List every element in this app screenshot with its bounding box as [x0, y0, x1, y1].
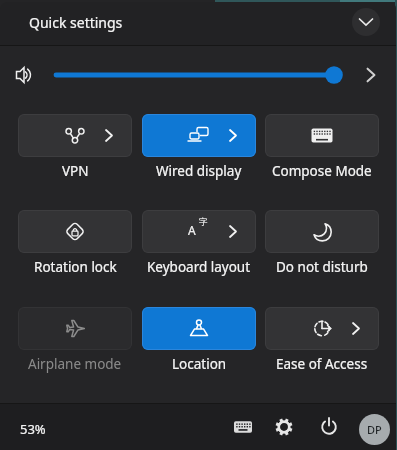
- button[interactable]: [142, 114, 256, 157]
- staticText: VPN: [62, 162, 89, 180]
- staticText: 字: [199, 217, 208, 228]
- staticText: Quick settings: [29, 13, 123, 32]
- staticText: Rotation lock: [34, 258, 117, 276]
- staticText: Location: [172, 355, 227, 373]
- staticText: Ease of Access: [276, 355, 368, 373]
- button[interactable]: [226, 410, 260, 444]
- button[interactable]: A: [142, 210, 256, 253]
- button[interactable]: [312, 410, 346, 444]
- button[interactable]: [265, 210, 379, 253]
- staticText: 53%: [20, 420, 46, 438]
- button[interactable]: [265, 307, 379, 350]
- staticText: Do not disturb: [276, 258, 368, 276]
- button[interactable]: [18, 307, 132, 350]
- button[interactable]: [142, 307, 256, 350]
- staticText: DP: [367, 422, 382, 437]
- staticText: Wired display: [156, 162, 242, 180]
- button[interactable]: DP: [359, 414, 390, 445]
- staticText: Airplane mode: [28, 355, 122, 373]
- button[interactable]: [352, 8, 380, 36]
- staticText: Keyboard layout: [147, 258, 251, 276]
- button[interactable]: [267, 410, 301, 444]
- button[interactable]: [18, 114, 132, 157]
- staticText: Compose Mode: [272, 162, 372, 180]
- staticText: A: [188, 222, 196, 238]
- button[interactable]: [358, 60, 388, 90]
- button[interactable]: [265, 114, 379, 157]
- button[interactable]: [18, 210, 132, 253]
